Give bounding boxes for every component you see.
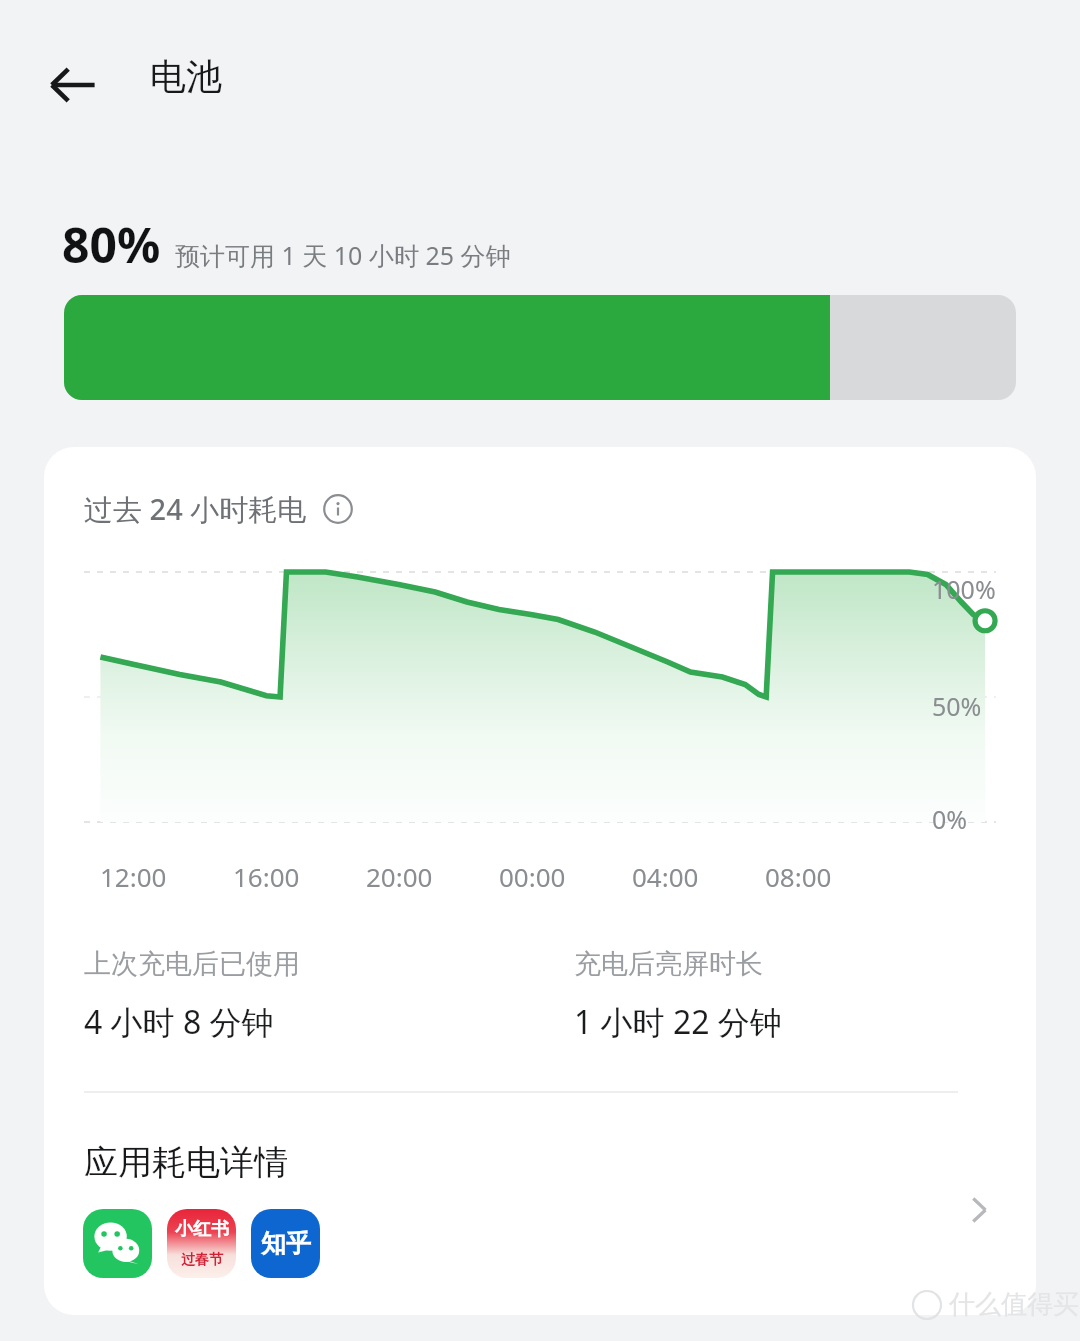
staticText: 08:00 [765, 859, 832, 894]
other: Zhihu [251, 1209, 320, 1278]
staticText: 0% [932, 802, 968, 836]
staticText: 80% [62, 212, 161, 277]
staticText: 4 小时 8 分钟 [84, 1000, 274, 1044]
staticText: 充电后亮屏时长 [574, 947, 763, 981]
staticText: 100% [932, 572, 996, 606]
staticText: 过春节 [181, 1251, 223, 1269]
staticText: 1 小时 22 分钟 [574, 1000, 782, 1044]
staticText: 04:00 [632, 859, 699, 894]
staticText: 20:00 [366, 859, 433, 894]
other: WeChat [83, 1209, 152, 1278]
staticText: 上次充电后已使用 [84, 947, 300, 981]
button[interactable] [64, 295, 1016, 400]
other: More [956, 1187, 1002, 1233]
staticText: 预计可用 1 天 10 小时 25 分钟 [175, 238, 511, 272]
staticText: 50% [932, 689, 982, 723]
button[interactable]: 应用耗电详情 [44, 1119, 1036, 1299]
staticText: 什么值得买 [949, 1288, 1079, 1321]
button[interactable]: 过去 24 小时耗电 [84, 489, 355, 529]
staticText: 小红书 [175, 1218, 229, 1241]
staticText: 12:00 [100, 859, 167, 894]
staticText: 电池 [150, 54, 222, 99]
staticText: 知乎 [261, 1228, 311, 1259]
staticText: 00:00 [499, 859, 566, 894]
button[interactable]: Back [40, 52, 106, 118]
staticText: 16:00 [233, 859, 300, 894]
other: Info [321, 492, 355, 526]
staticText: 过去 24 小时耗电 [84, 489, 307, 529]
staticText: 应用耗电详情 [84, 1141, 288, 1184]
other: Xiaohongshu [167, 1209, 236, 1278]
